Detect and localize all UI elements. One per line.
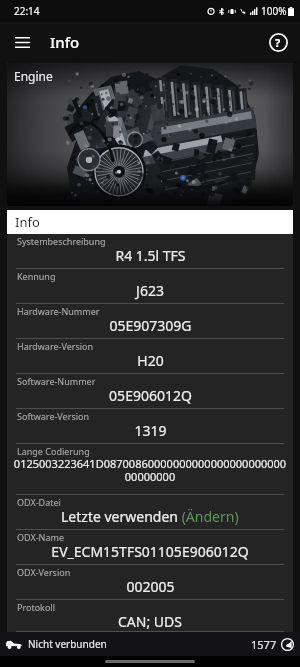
staticText: 05E906012Q: [109, 386, 192, 405]
button[interactable]: Protokoll: [7, 600, 293, 632]
button[interactable]: ODX-Name: [7, 530, 293, 565]
staticText: Software-Nummer: [17, 375, 96, 387]
staticText: EV_ECM15TFS01105E906012Q: [51, 542, 249, 561]
staticText: 1319: [134, 421, 167, 440]
staticText: ODX-Datei: [17, 496, 61, 508]
button[interactable]: Hardware-Version: [7, 339, 293, 374]
button[interactable]: 1577: [251, 637, 294, 652]
staticText: ODX-Version: [17, 566, 71, 578]
staticText: (Ändern): [178, 507, 239, 526]
staticText: R4 1.5l TFS: [115, 246, 186, 265]
staticText: Info: [15, 213, 40, 231]
button[interactable]: Systembeschreibung: [7, 234, 293, 269]
button[interactable]: Engine control unit image: [7, 63, 293, 206]
staticText: Nicht verbunden: [28, 637, 107, 651]
staticText: Systembeschreibung: [17, 235, 106, 247]
button[interactable]: Info: [7, 210, 293, 234]
staticText: 100%: [261, 4, 287, 18]
button[interactable]: Software-Nummer: [7, 374, 293, 409]
staticText: 002005: [126, 577, 175, 596]
staticText: Kennung: [17, 270, 56, 282]
staticText: Letzte verwenden: [61, 507, 178, 526]
staticText: H20: [137, 351, 164, 370]
staticText: Hardware-Version: [17, 340, 94, 352]
staticText: Protokoll: [17, 601, 56, 613]
button[interactable]: Lange Codierung: [7, 444, 293, 495]
staticText: Lange Codierung: [17, 445, 90, 457]
staticText: 05E907309G: [109, 316, 192, 335]
staticText: 1577: [251, 637, 277, 652]
staticText: Info: [50, 32, 80, 52]
other: Vehicle connection: [6, 640, 22, 649]
button[interactable]: ODX-Version: [7, 565, 293, 600]
staticText: Software-Version: [17, 410, 90, 422]
staticText: 0125003223641D08700860000000000000000000…: [13, 456, 287, 484]
staticText: Hardware-Nummer: [17, 305, 100, 317]
staticText: ?: [275, 35, 281, 50]
staticText: Engine: [14, 68, 53, 84]
staticText: CAN; UDS: [118, 612, 182, 630]
staticText: J623: [136, 281, 164, 300]
button[interactable]: Software-Version: [7, 409, 293, 444]
button[interactable]: Open navigation menu: [6, 26, 38, 58]
button[interactable]: Hardware-Nummer: [7, 304, 293, 339]
button[interactable]: ODX-Datei: [7, 495, 293, 530]
other: Connection status: [281, 638, 294, 651]
button[interactable]: Kennung: [7, 269, 293, 304]
staticText: 22:14: [14, 4, 40, 18]
button[interactable]: Help: [262, 26, 294, 58]
button[interactable]: Vehicle connection: [6, 637, 107, 651]
staticText: ODX-Name: [17, 531, 64, 543]
